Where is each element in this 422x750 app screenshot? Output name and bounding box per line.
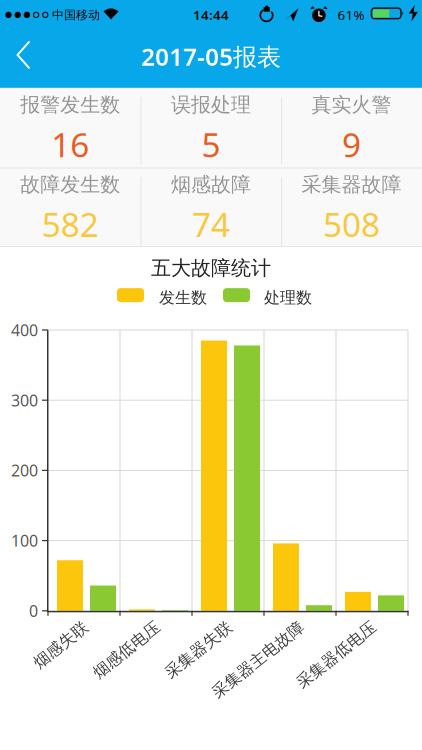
staticText: 烟感故障 — [171, 172, 251, 197]
staticText: 采集器主电故障 — [202, 650, 314, 670]
staticText: 0 — [29, 600, 38, 621]
staticText: 烟感失联 — [29, 635, 93, 655]
staticText: 故障发生数 — [20, 172, 120, 197]
staticText: 误报处理 — [171, 93, 251, 117]
staticText: 16 — [51, 122, 89, 167]
staticText: 508 — [323, 202, 380, 246]
staticText: 2017-05报表 — [141, 40, 281, 72]
staticText: 中国移动 — [52, 7, 100, 22]
staticText: 400 — [11, 319, 38, 341]
staticText: 14:44 — [193, 6, 229, 24]
staticText: 发生数 — [159, 288, 207, 308]
staticText: 5 — [201, 122, 220, 167]
staticText: 300 — [11, 390, 38, 411]
staticText: 100 — [11, 530, 38, 551]
staticText: 74 — [192, 202, 230, 246]
staticText: 采集器低电压 — [288, 645, 384, 665]
staticText: 61% — [337, 6, 364, 24]
staticText: 200 — [11, 460, 38, 481]
staticText: 报警发生数 — [20, 93, 120, 117]
staticText: 烟感低电压 — [87, 640, 167, 660]
staticText: 处理数 — [264, 288, 312, 308]
staticText: 五大故障统计 — [151, 256, 271, 280]
staticText: 真实火警 — [311, 93, 391, 117]
staticText: 采集器失联 — [159, 640, 239, 660]
staticText: 采集器故障 — [301, 172, 401, 197]
button[interactable]: Back — [0, 30, 46, 80]
staticText: 9 — [342, 122, 361, 167]
staticText: 582 — [42, 202, 99, 246]
